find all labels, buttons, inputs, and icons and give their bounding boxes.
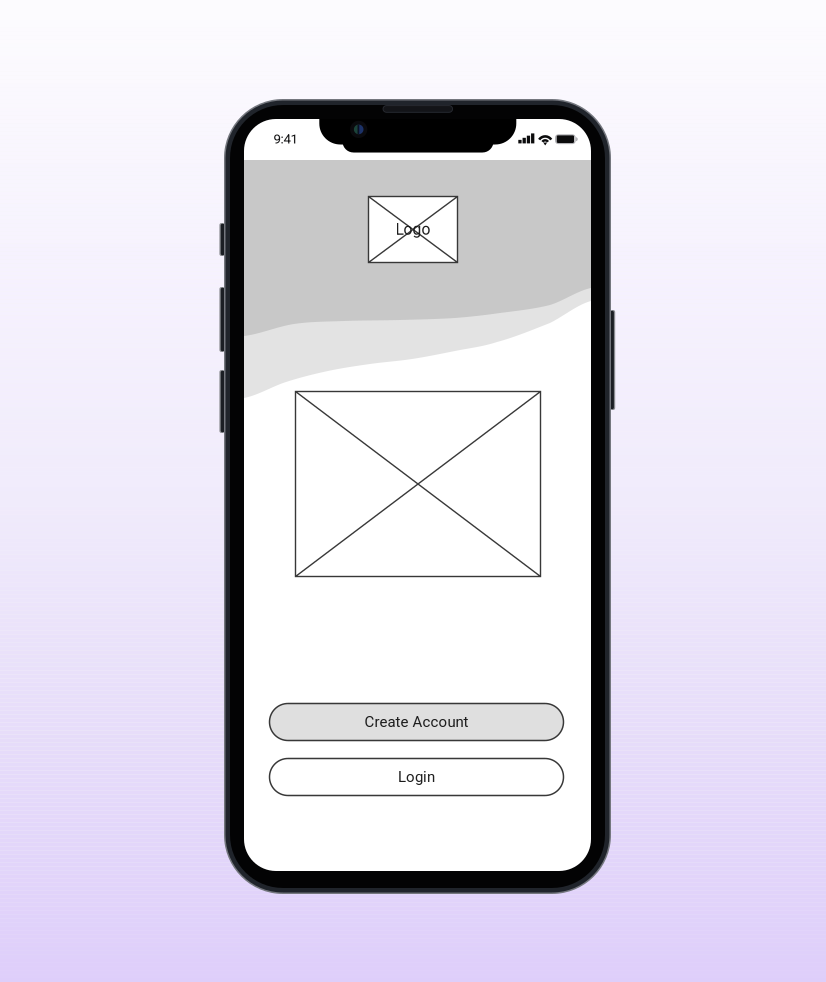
staticText: Logo [395,220,430,239]
button[interactable]: Create Account [269,703,563,740]
staticText: Create Account [364,713,468,731]
staticText: 9:41 [273,131,297,147]
button[interactable]: Login [269,758,563,795]
staticText: Login [398,768,435,786]
